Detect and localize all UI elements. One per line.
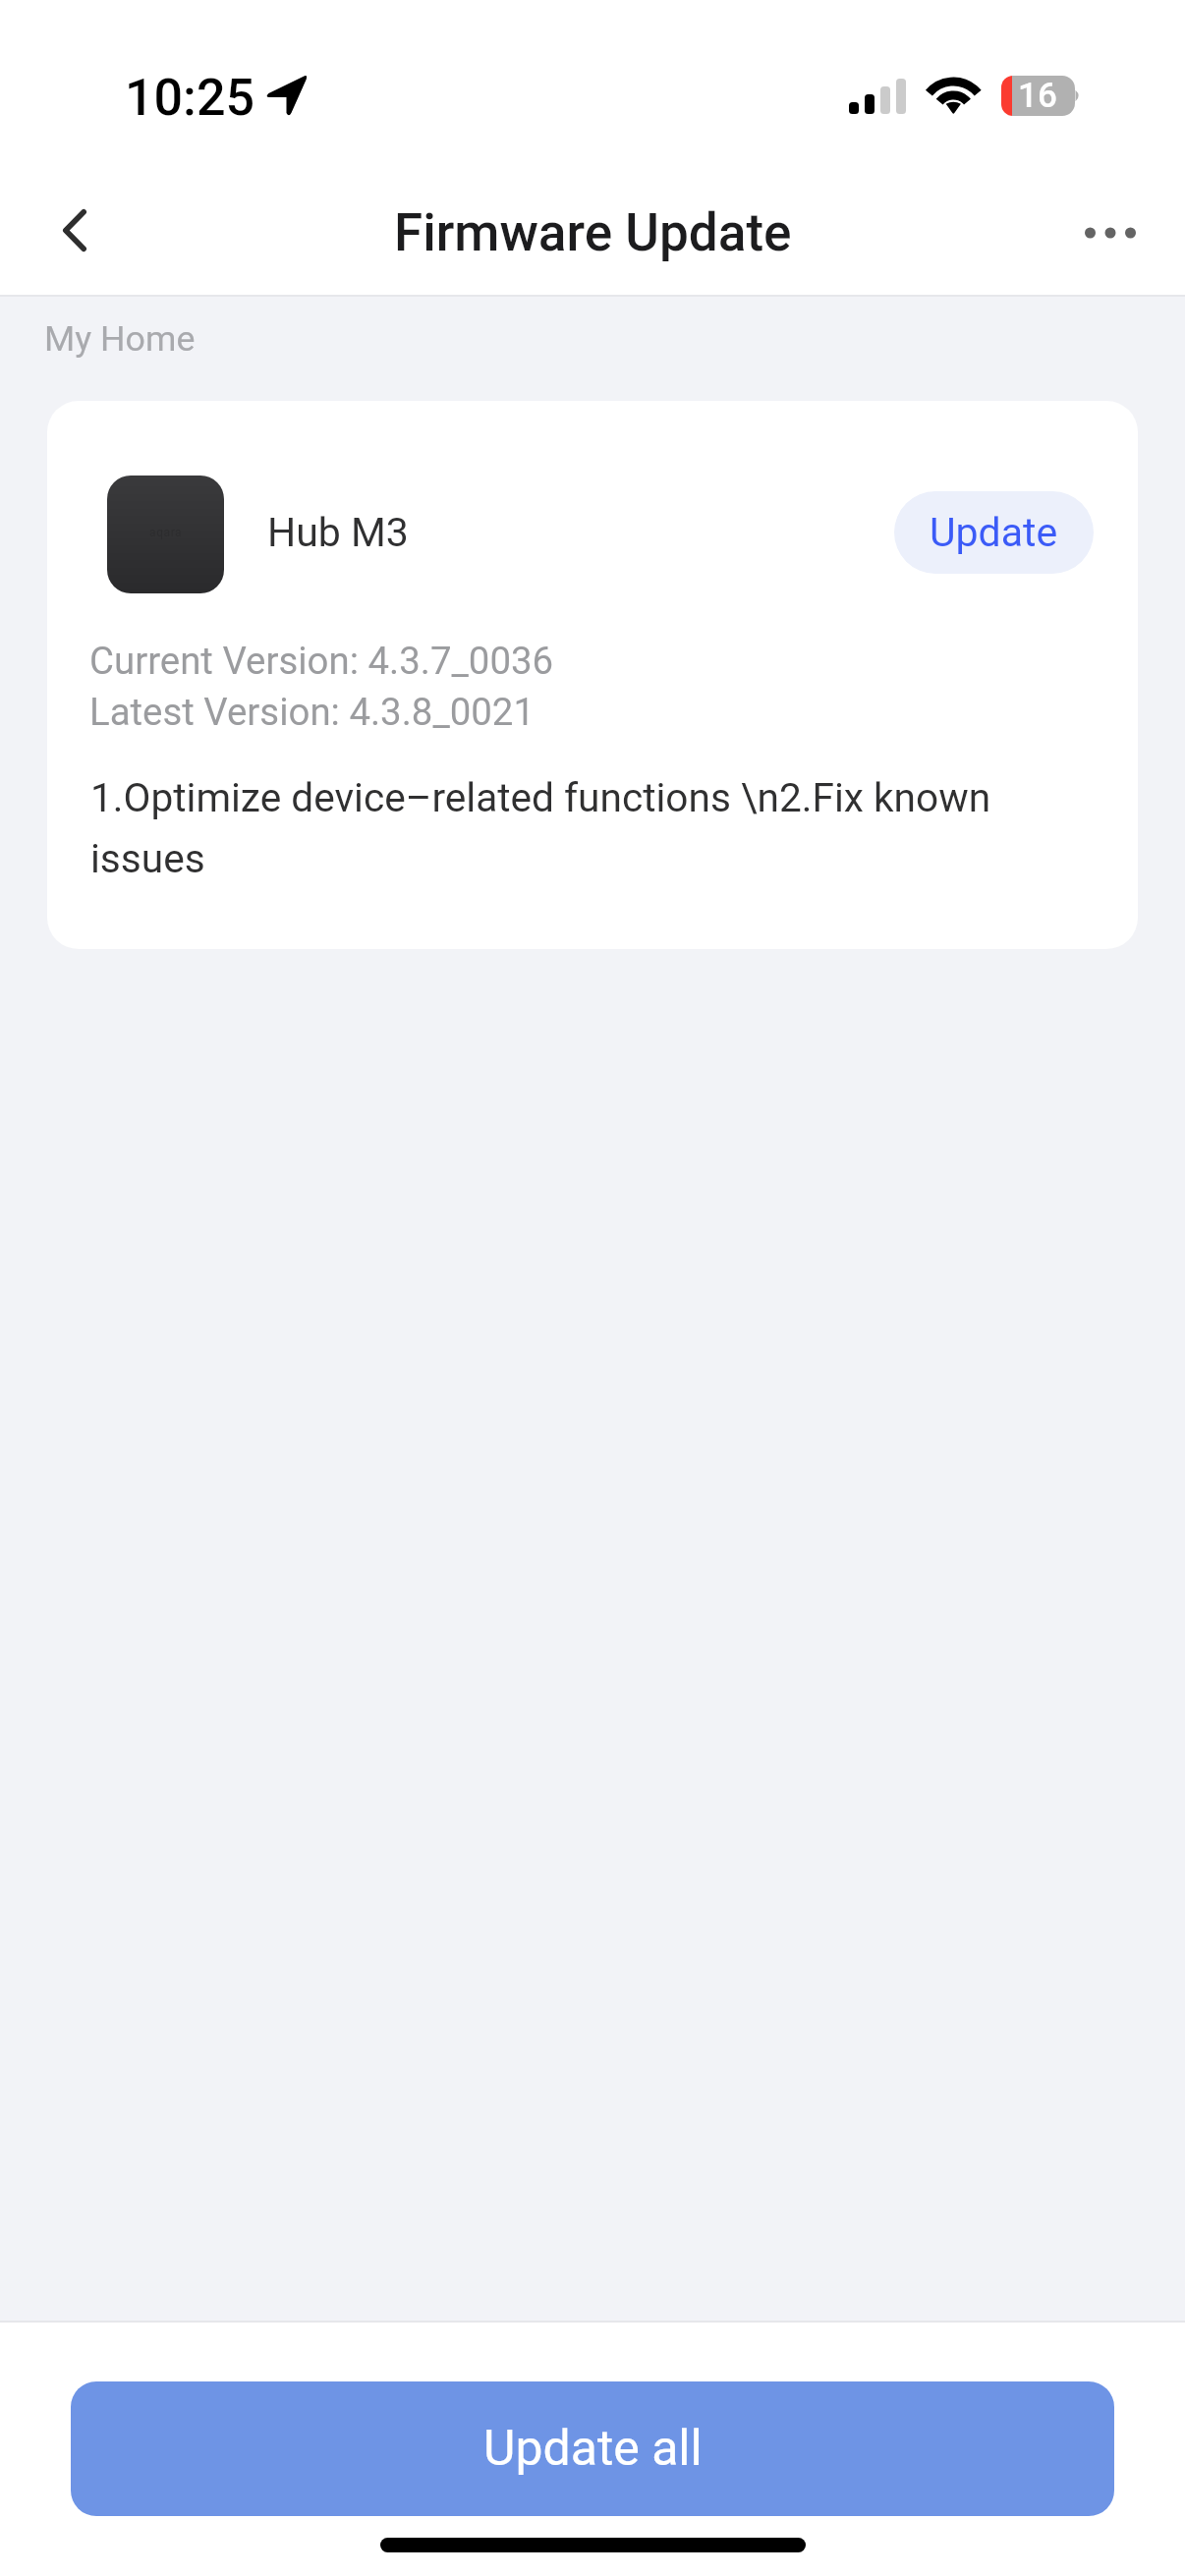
staticText: Current Version: 4.3.7_0036: [89, 639, 554, 683]
staticText: Latest Version: 4.3.8_0021: [89, 690, 536, 734]
staticText: 1.Optimize device–related functions \n2.…: [90, 774, 1009, 882]
staticText: Update: [930, 509, 1058, 556]
button[interactable]: aqara: [47, 401, 1138, 949]
staticText: 10:25: [125, 68, 255, 128]
staticText: Update all: [483, 2420, 703, 2478]
staticText: 16: [1018, 76, 1057, 116]
staticText: Hub M3: [267, 509, 409, 556]
staticText: My Home: [44, 318, 196, 360]
staticText: Firmware Update: [394, 202, 792, 263]
button[interactable]: More options: [1056, 179, 1164, 287]
button[interactable]: Update: [894, 491, 1094, 574]
button[interactable]: Update all: [71, 2381, 1114, 2516]
button[interactable]: Back: [21, 176, 129, 284]
